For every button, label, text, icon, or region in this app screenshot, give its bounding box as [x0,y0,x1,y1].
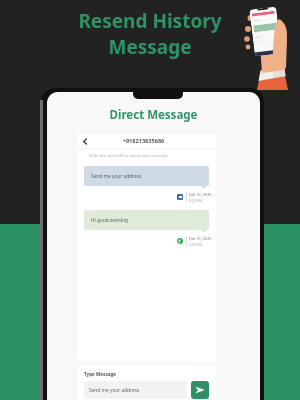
staticText: 4:32 PM [189,198,202,203]
staticText: +918213835686 [82,137,205,145]
button[interactable]: Hi good evening [84,210,209,230]
staticText: 6:03 PM [189,242,202,247]
button[interactable]: Send [191,381,209,399]
button[interactable]: Send me your address [84,166,209,186]
staticText: Send me your address [89,387,140,394]
staticText: Type Message [84,371,117,377]
staticText: Feb 16, 2025 [189,192,212,197]
staticText: Hi good evening [91,217,128,224]
staticText: Feb 16, 2025 [189,236,212,241]
staticText: Message [108,34,192,60]
staticText: Direct Message [47,107,260,123]
staticText: Resend History [78,8,222,34]
staticText: Slide the card left to delete the messag… [89,153,168,159]
button[interactable]: Back [77,134,93,148]
staticText: Send me your address [91,173,142,180]
button[interactable]: Send me your address [84,381,187,399]
